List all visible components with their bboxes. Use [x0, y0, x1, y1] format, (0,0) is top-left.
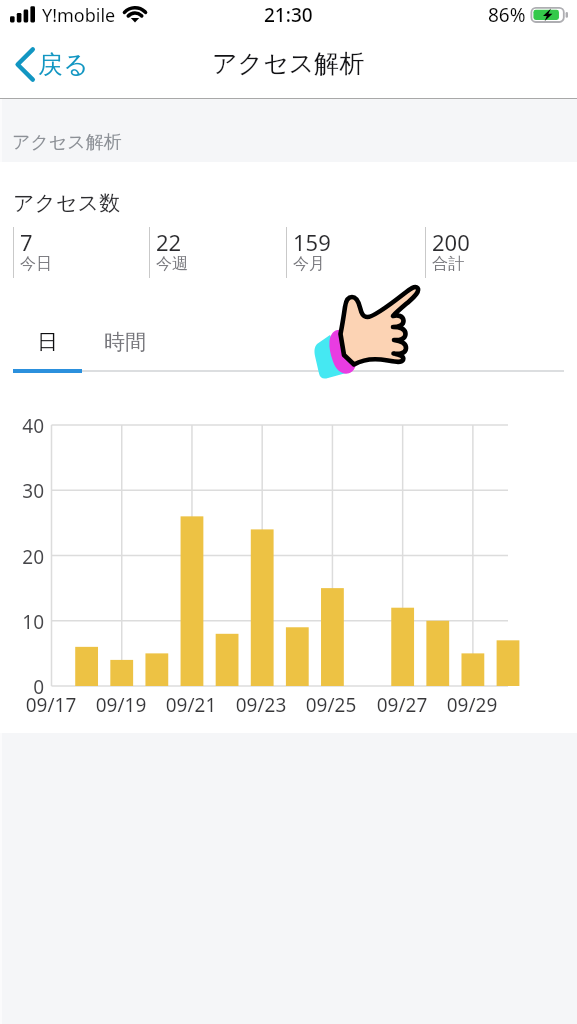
other: Cellular signal strength: [9, 5, 37, 24]
staticText: 30: [0, 478, 44, 504]
staticText: 09/29: [427, 692, 517, 718]
staticText: 09/21: [146, 692, 236, 718]
staticText: 今日: [20, 254, 52, 274]
staticText: アクセス解析: [12, 131, 122, 154]
staticText: 09/27: [357, 692, 447, 718]
staticText: 時間: [104, 329, 146, 355]
staticText: 40: [0, 413, 44, 439]
staticText: 200: [432, 227, 470, 257]
other: Wi-Fi connected: [124, 5, 148, 24]
staticText: Y!mobile: [42, 3, 116, 28]
staticText: 日: [37, 329, 58, 355]
staticText: 09/19: [76, 692, 166, 718]
staticText: 09/17: [6, 692, 96, 718]
staticText: 合計: [432, 254, 464, 274]
other: Battery 86 percent, charging: [530, 5, 572, 24]
staticText: 09/23: [216, 692, 306, 718]
staticText: 22: [156, 227, 182, 257]
staticText: 09/25: [286, 692, 376, 718]
button[interactable]: 159: [286, 227, 416, 279]
staticText: 159: [293, 227, 331, 257]
button[interactable]: 200: [425, 227, 555, 279]
button[interactable]: 22: [149, 227, 279, 279]
staticText: アクセス数: [13, 190, 120, 216]
button[interactable]: 時間: [81, 314, 169, 370]
button[interactable]: 7: [13, 227, 143, 279]
staticText: 0: [0, 674, 44, 700]
staticText: アクセス解析: [212, 48, 365, 79]
staticText: 21:30: [264, 2, 313, 28]
staticText: 20: [0, 544, 44, 570]
staticText: 86%: [488, 2, 526, 28]
staticText: 10: [0, 609, 44, 635]
staticText: 戻る: [38, 49, 89, 80]
button[interactable]: Back: [0, 39, 100, 90]
staticText: 今月: [293, 254, 325, 274]
staticText: 7: [20, 227, 33, 257]
button[interactable]: 日: [13, 314, 81, 370]
staticText: 今週: [156, 254, 188, 274]
